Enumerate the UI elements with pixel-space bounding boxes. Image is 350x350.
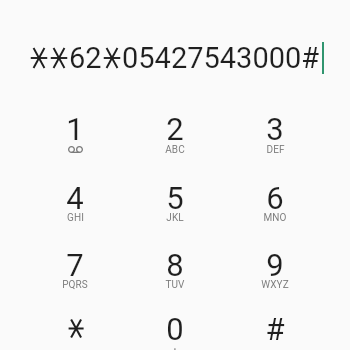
staticText: 6 [266, 180, 284, 216]
button[interactable]: 1 [41, 102, 109, 170]
staticText: MNO [263, 212, 287, 224]
button[interactable]: 2 [141, 102, 209, 170]
staticText: 2 [166, 111, 184, 147]
staticText: 4 [66, 180, 84, 216]
staticText: 05427543000# [122, 41, 320, 75]
staticText: 9 [266, 247, 284, 283]
button[interactable]: Star [41, 302, 109, 350]
staticText: 3 [266, 111, 284, 147]
staticText: 1 [66, 111, 84, 147]
button[interactable]: 9 [241, 238, 309, 306]
staticText: + [171, 344, 179, 350]
staticText: 7 [66, 247, 84, 283]
staticText: TUV [165, 279, 185, 291]
button[interactable]: 5 [141, 171, 209, 239]
staticText: GHI [67, 212, 84, 224]
staticText: ABC [165, 144, 185, 156]
staticText: 0 [166, 311, 184, 347]
staticText: 62 [69, 41, 102, 75]
button[interactable]: 3 [241, 102, 309, 170]
button[interactable]: 0 [141, 302, 209, 350]
staticText: DEF [266, 144, 285, 156]
button[interactable]: 8 [141, 238, 209, 306]
staticText: 8 [166, 247, 184, 283]
button[interactable]: 7 [41, 238, 109, 306]
staticText: PQRS [62, 279, 88, 291]
staticText: JKL [166, 212, 184, 224]
staticText: WXYZ [261, 279, 289, 291]
button[interactable]: # [241, 302, 309, 350]
button[interactable]: 6 [241, 171, 309, 239]
button[interactable]: 4 [41, 171, 109, 239]
staticText: 5 [166, 180, 184, 216]
staticText: # [265, 311, 285, 347]
button[interactable]: **62*05427543000# [0, 38, 350, 78]
